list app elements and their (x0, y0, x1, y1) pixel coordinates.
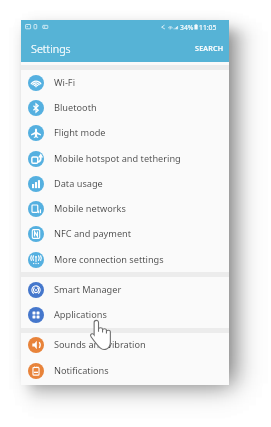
button[interactable]: Data usage (21, 171, 229, 196)
staticText: Sounds and vibration (54, 338, 146, 351)
staticText: SEARCH (195, 43, 224, 53)
staticText: Smart Manager (54, 283, 122, 296)
button[interactable]: More connection settings (21, 247, 229, 272)
button[interactable]: Mobile networks (21, 196, 229, 221)
staticText: 34% (180, 23, 194, 32)
button[interactable]: Sounds and vibration (21, 332, 229, 357)
staticText: Mobile networks (54, 202, 126, 215)
staticText: More connection settings (54, 253, 164, 266)
button[interactable]: SEARCH (190, 37, 226, 59)
staticText: Bluetooth (54, 101, 97, 114)
button[interactable]: Bluetooth (21, 95, 229, 120)
other: Pointer (90, 319, 113, 351)
staticText: Flight mode (54, 126, 106, 139)
button[interactable]: NFC and payment (21, 221, 229, 246)
staticText: Data usage (54, 177, 103, 190)
button[interactable]: Wi-Fi (21, 70, 229, 95)
staticText: Settings (31, 41, 71, 56)
staticText: Applications (54, 308, 107, 321)
staticText: Notifications (54, 364, 109, 377)
button[interactable]: Smart Manager (21, 277, 229, 302)
button[interactable]: Notifications (21, 358, 229, 383)
button[interactable]: Applications (21, 302, 229, 327)
staticText: 11:05 (199, 23, 217, 32)
staticText: Mobile hotspot and tethering (54, 152, 181, 165)
staticText: NFC and payment (54, 227, 132, 240)
staticText: Wi-Fi (54, 76, 76, 89)
button[interactable]: Flight mode (21, 120, 229, 145)
button[interactable]: Mobile hotspot and tethering (21, 146, 229, 171)
